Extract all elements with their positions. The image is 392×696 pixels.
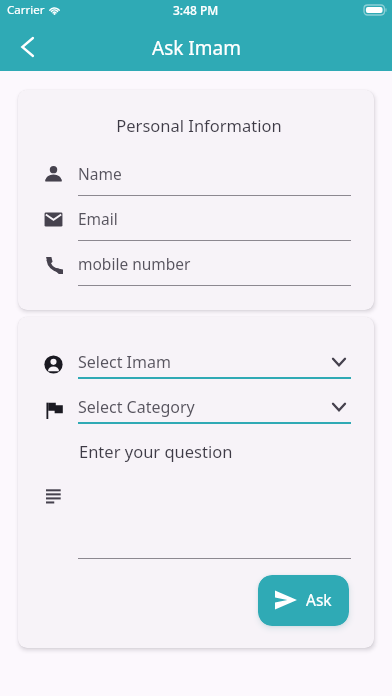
button[interactable]: Select Category — [18, 387, 374, 432]
staticText: Carrier — [7, 2, 45, 18]
button[interactable]: Name — [18, 157, 374, 202]
staticText: Ask Imam — [152, 35, 241, 61]
button[interactable]: Ask — [258, 575, 349, 626]
staticText: mobile number — [78, 253, 191, 274]
staticText: Name — [78, 163, 122, 184]
button[interactable]: Back — [8, 27, 46, 65]
button[interactable]: mobile number — [18, 247, 374, 292]
staticText: Select Category — [78, 396, 195, 418]
staticText: Personal Information — [21, 114, 374, 136]
staticText: Email — [78, 208, 118, 229]
staticText: Ask — [306, 589, 332, 610]
staticText: Select Imam — [78, 351, 171, 373]
staticText: 3:48 PM — [173, 2, 219, 18]
button[interactable]: Email — [18, 202, 374, 247]
button[interactable] — [18, 462, 374, 559]
staticText: Enter your question — [79, 440, 233, 462]
button[interactable]: Select Imam — [18, 342, 374, 387]
